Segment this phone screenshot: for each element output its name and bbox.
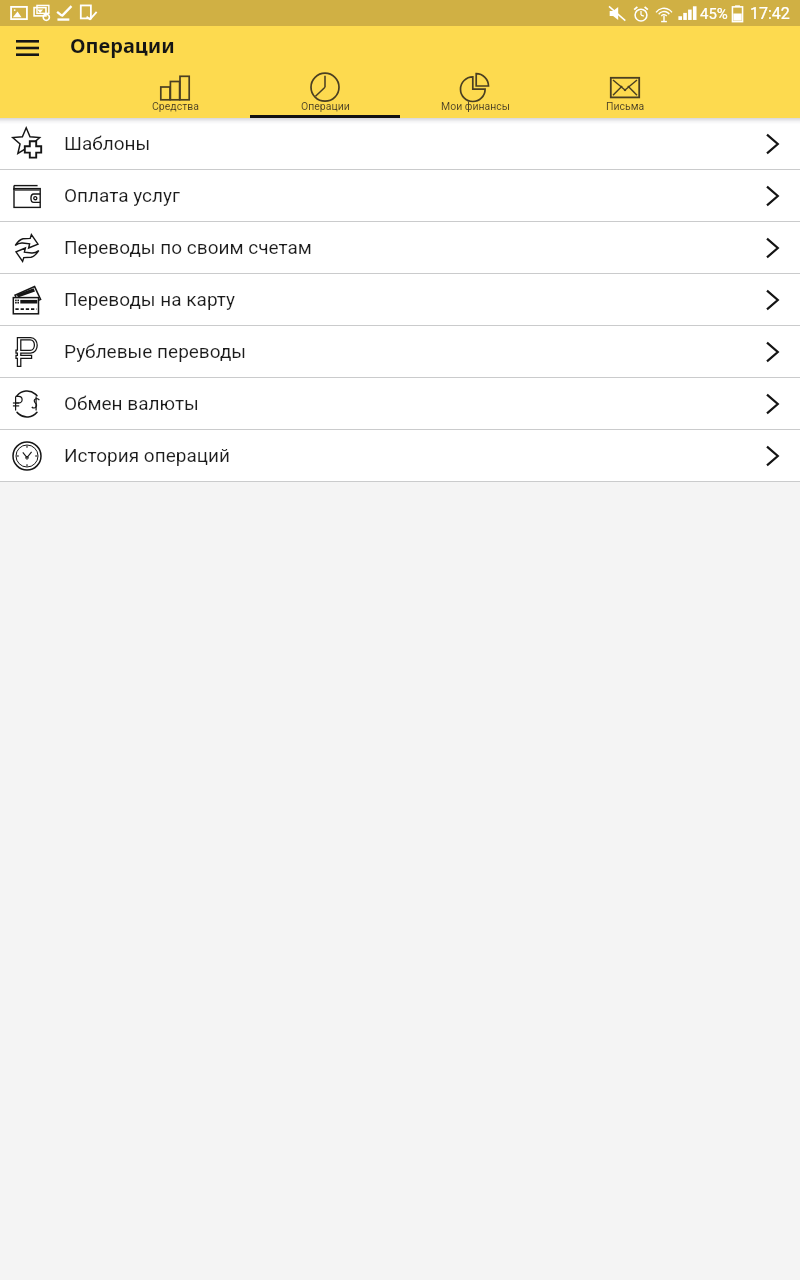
staticText: Средства [152, 100, 199, 112]
button[interactable]: Рублевые переводы [0, 326, 800, 378]
staticText: Операции [301, 100, 350, 112]
button[interactable]: Open navigation menu [6, 27, 48, 69]
staticText: Переводы на карту [64, 288, 236, 310]
button[interactable]: Шаблоны [0, 118, 800, 170]
staticText: Операции [70, 32, 175, 59]
button[interactable]: Переводы по своим счетам [0, 222, 800, 274]
button[interactable]: Обмен валюты [0, 378, 800, 430]
staticText: Рублевые переводы [64, 340, 247, 362]
button[interactable]: Мои финансы [400, 70, 550, 118]
staticText: Переводы по своим счетам [64, 236, 312, 258]
staticText: Обмен валюты [64, 392, 199, 414]
staticText: 17:42 [750, 4, 790, 23]
staticText: Мои финансы [441, 100, 510, 112]
staticText: 45% [700, 5, 728, 23]
staticText: История операций [64, 444, 230, 466]
button[interactable]: Оплата услуг [0, 170, 800, 222]
staticText: Письма [606, 100, 645, 112]
staticText: Шаблоны [64, 132, 151, 154]
button[interactable]: Переводы на карту [0, 274, 800, 326]
button[interactable]: История операций [0, 430, 800, 482]
button[interactable]: Операции [250, 70, 400, 118]
staticText: Оплата услуг [64, 184, 181, 206]
button[interactable]: Средства [100, 70, 250, 118]
button[interactable]: Письма [550, 70, 700, 118]
